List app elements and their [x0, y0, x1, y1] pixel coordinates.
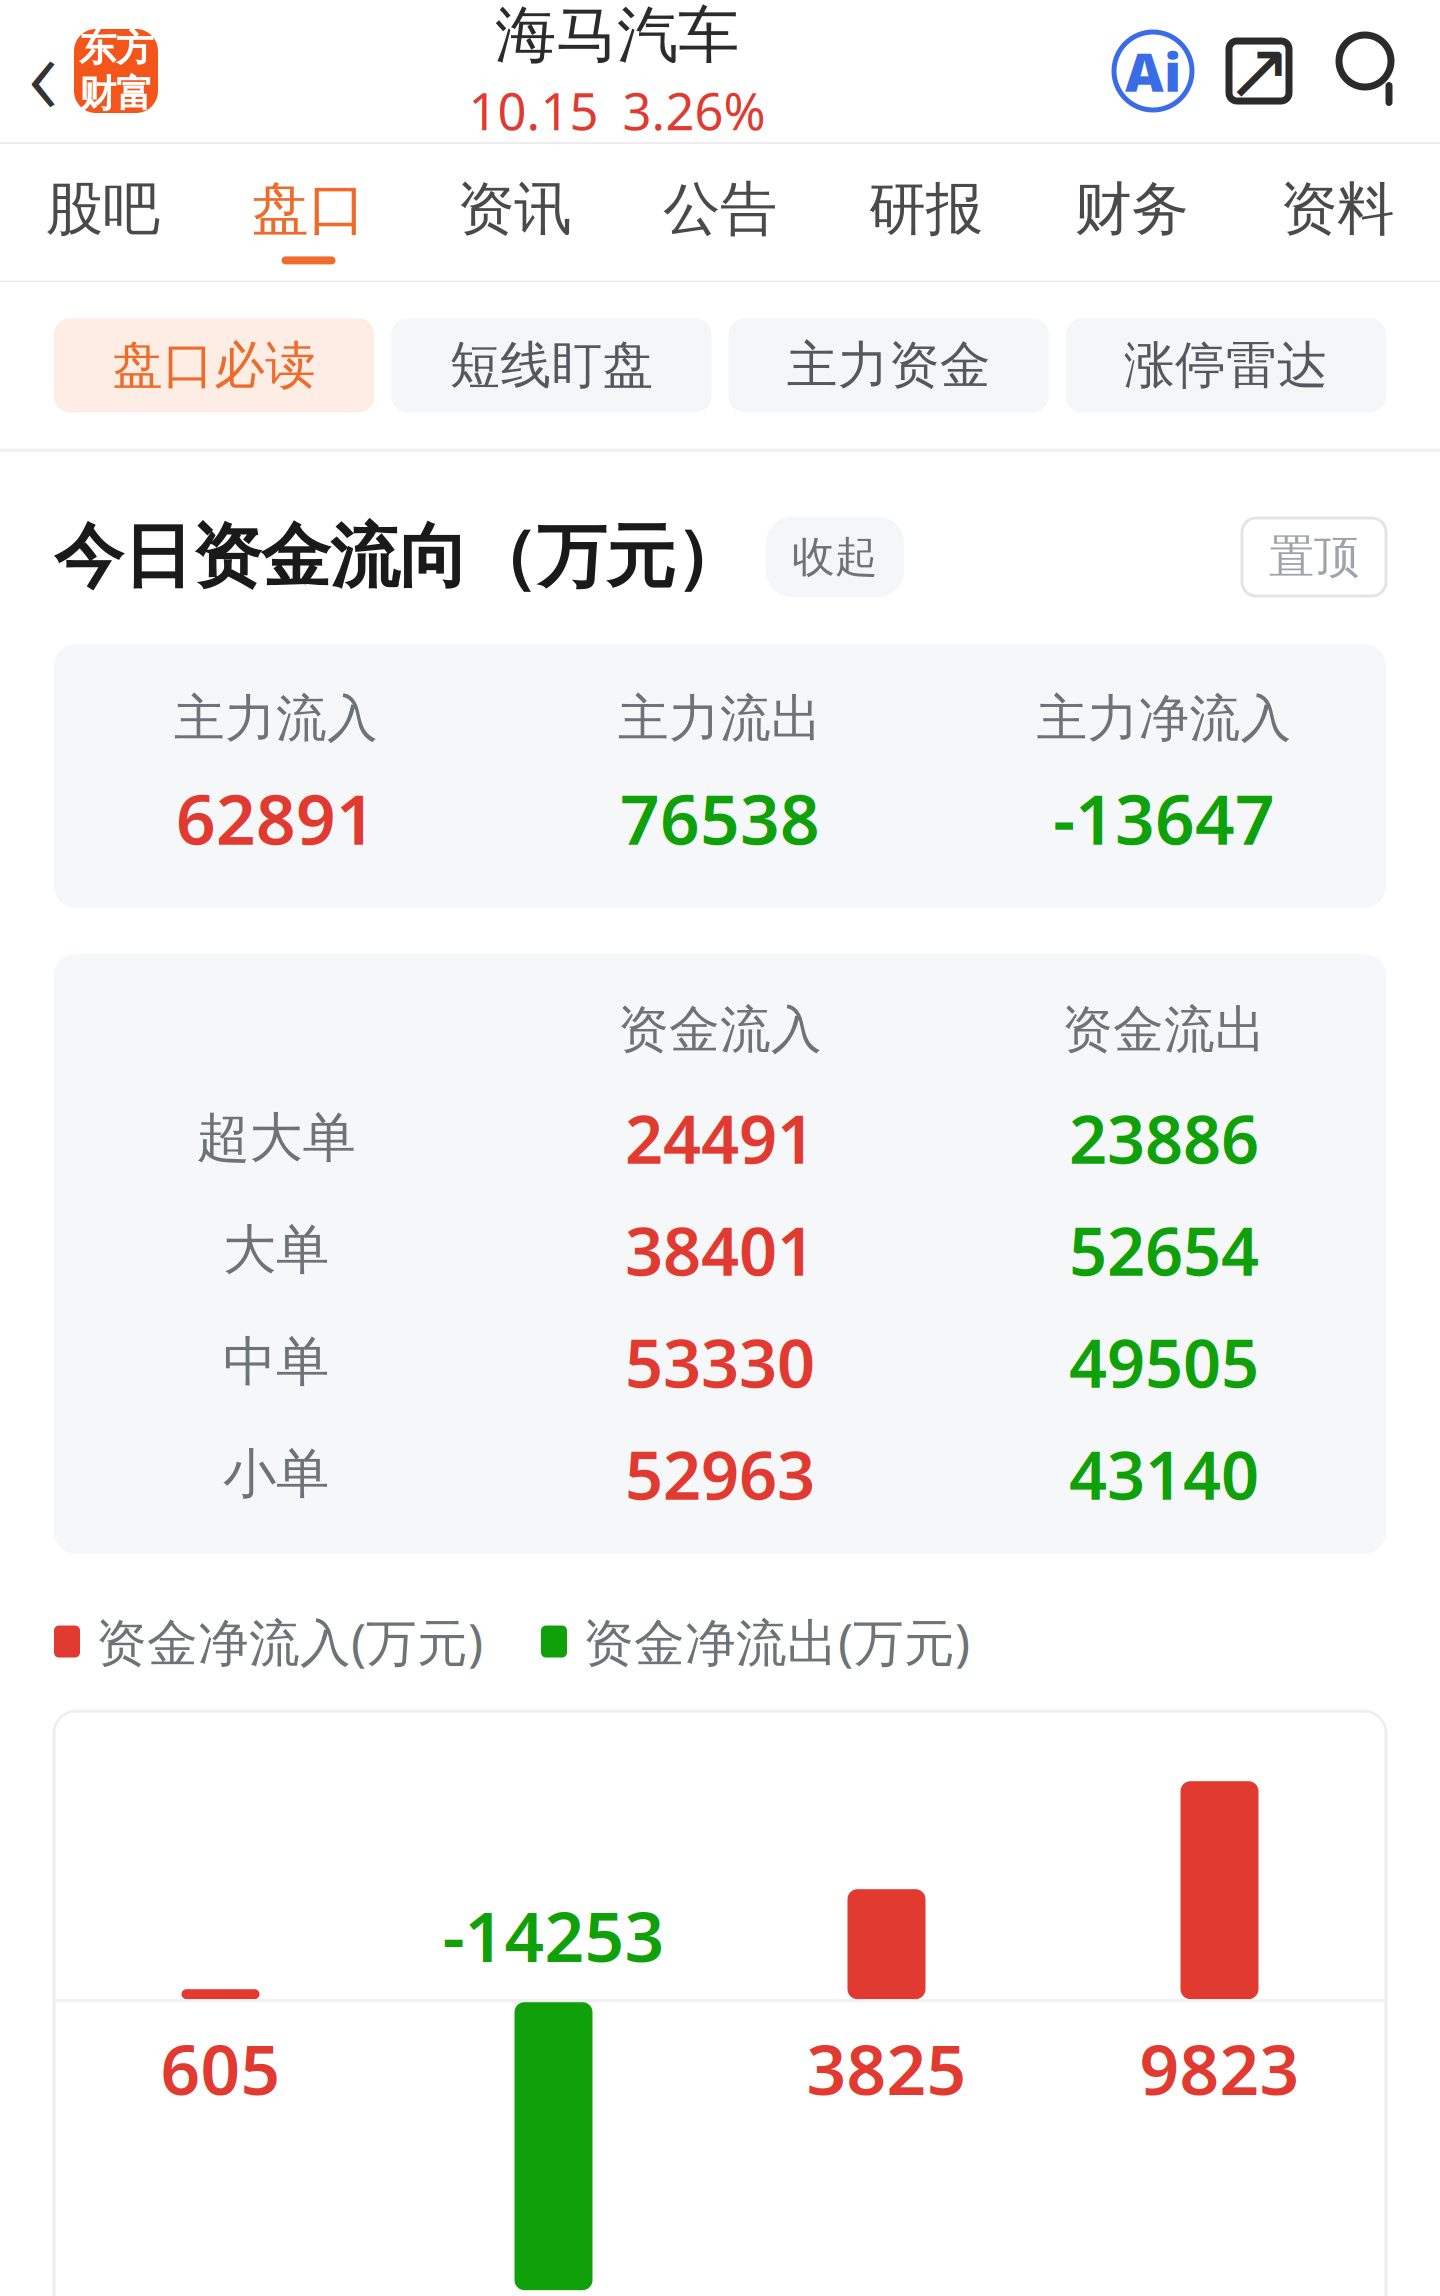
staticText: 短线盯盘	[449, 334, 653, 396]
staticText: 605	[160, 2022, 280, 2114]
staticText: 主力流入	[174, 688, 378, 750]
staticText: 置顶	[1269, 529, 1359, 585]
staticText: 大单	[223, 1217, 329, 1283]
staticText: 财务	[1074, 174, 1188, 244]
staticText: 资料	[1280, 174, 1394, 244]
staticText: 今日资金流向（万元）	[54, 514, 744, 600]
button[interactable]: 涨停雷达	[1066, 318, 1386, 412]
staticText: 62891	[176, 772, 376, 864]
button[interactable]: 置顶	[1242, 518, 1386, 596]
staticText: 3825	[806, 2022, 966, 2114]
staticText: 小单	[223, 1441, 329, 1507]
staticText: 76538	[620, 772, 820, 864]
staticText: 资金净流出(万元)	[583, 1608, 970, 1675]
staticText: 收起	[792, 531, 878, 583]
button[interactable]: 搜索	[1326, 32, 1404, 110]
staticText: 52963	[625, 1430, 815, 1518]
staticText: -13647	[1053, 772, 1275, 864]
button[interactable]: 公告	[617, 144, 823, 280]
staticText: 公告	[663, 174, 777, 244]
button[interactable]: 短线盯盘	[391, 318, 711, 412]
staticText: 研报	[869, 174, 983, 244]
staticText: 52654	[1069, 1206, 1259, 1294]
staticText: 38401	[625, 1206, 815, 1294]
staticText: 资金流出	[1062, 999, 1266, 1061]
button[interactable]: 资料	[1234, 144, 1440, 280]
button[interactable]: 主力资金	[728, 318, 1049, 412]
button[interactable]: 盘口	[206, 144, 411, 280]
button[interactable]: 财务	[1029, 144, 1234, 280]
staticText: 资金净流入(万元)	[96, 1608, 483, 1675]
staticText: 涨停雷达	[1124, 334, 1328, 396]
staticText: 主力流出	[618, 688, 822, 750]
staticText: 10.15	[468, 77, 598, 144]
staticText: 49505	[1069, 1318, 1259, 1406]
staticText: 超大单	[196, 1105, 355, 1171]
staticText: 资金流入	[618, 999, 822, 1061]
staticText: 23886	[1069, 1094, 1259, 1182]
staticText: 盘口	[252, 174, 366, 244]
staticText: Ai	[1125, 36, 1181, 106]
button[interactable]: 返回	[0, 4, 170, 138]
staticText: 资讯	[457, 174, 571, 244]
button[interactable]: 研报	[823, 144, 1029, 280]
staticText: ↗	[1225, 26, 1292, 116]
button[interactable]: 股吧	[0, 144, 206, 280]
staticText: 主力资金	[787, 334, 991, 396]
button[interactable]: 收起	[766, 517, 904, 597]
button[interactable]: 分享	[1220, 32, 1298, 110]
button[interactable]: AI 助手	[1114, 32, 1192, 110]
staticText: 盘口必读	[112, 334, 316, 396]
staticText: 股吧	[46, 174, 160, 244]
staticText: ‹	[28, 0, 58, 147]
staticText: -14253	[442, 1889, 664, 1981]
staticText: 9823	[1139, 2022, 1299, 2114]
staticText: 3.26%	[622, 77, 765, 144]
staticText: 主力净流入	[1036, 688, 1291, 750]
staticText: 东方	[79, 25, 153, 71]
button[interactable]: 盘口必读	[54, 318, 374, 412]
staticText: 24491	[625, 1094, 815, 1182]
staticText: 53330	[625, 1318, 815, 1406]
staticText: 财富	[79, 71, 153, 117]
staticText: 海马汽车	[495, 0, 739, 73]
button[interactable]: 资讯	[411, 144, 617, 280]
staticText: 43140	[1069, 1430, 1259, 1518]
staticText: 中单	[223, 1329, 329, 1395]
